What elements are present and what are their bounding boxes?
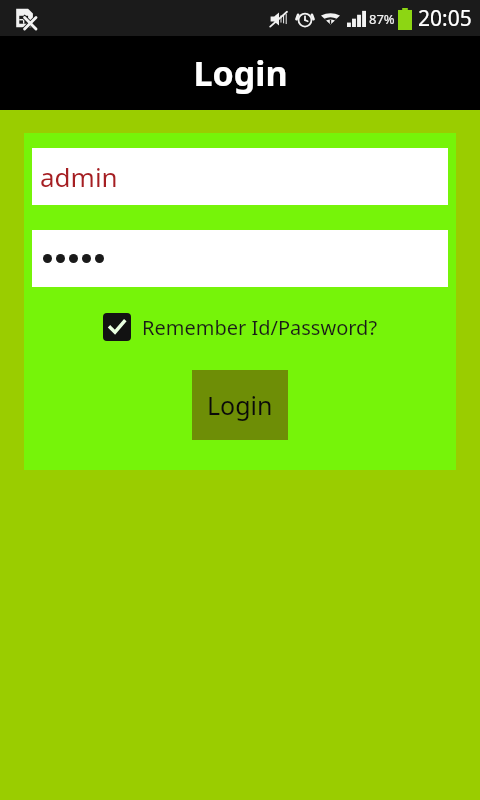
button[interactable]: admin bbox=[32, 148, 448, 205]
button[interactable]: Login bbox=[192, 370, 288, 440]
staticText: 20:05 bbox=[418, 4, 472, 33]
staticText: 87% bbox=[369, 10, 395, 28]
staticText: admin bbox=[40, 159, 118, 194]
button[interactable] bbox=[32, 230, 448, 287]
staticText: Login bbox=[193, 50, 288, 96]
staticText: Login bbox=[207, 388, 273, 422]
button[interactable]: Remember Id/Password? bbox=[99, 311, 382, 343]
staticText: Remember Id/Password? bbox=[142, 314, 378, 341]
